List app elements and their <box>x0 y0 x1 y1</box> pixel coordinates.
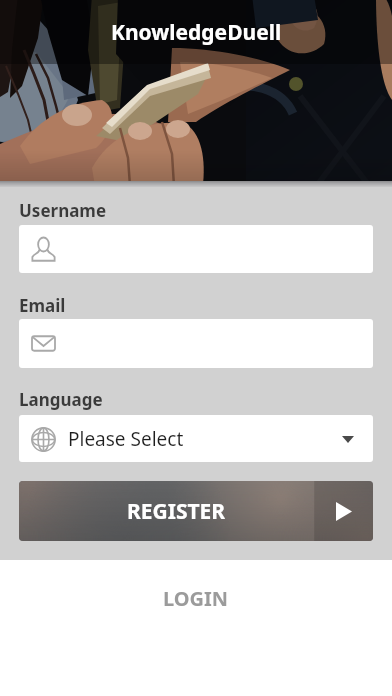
staticText: LOGIN <box>163 585 229 612</box>
other: Submit <box>314 481 373 541</box>
button[interactable]: Please Select <box>19 415 373 462</box>
staticText: Username <box>19 199 107 222</box>
button[interactable]: LOGIN <box>0 560 392 636</box>
staticText: REGISTER <box>127 497 226 526</box>
staticText: KnowledgeDuell <box>111 18 282 47</box>
button[interactable] <box>19 225 373 273</box>
staticText: Email <box>19 294 66 317</box>
staticText: Language <box>19 388 103 411</box>
button[interactable] <box>19 319 373 368</box>
button[interactable]: REGISTER <box>19 481 373 541</box>
staticText: Please Select <box>68 426 184 452</box>
